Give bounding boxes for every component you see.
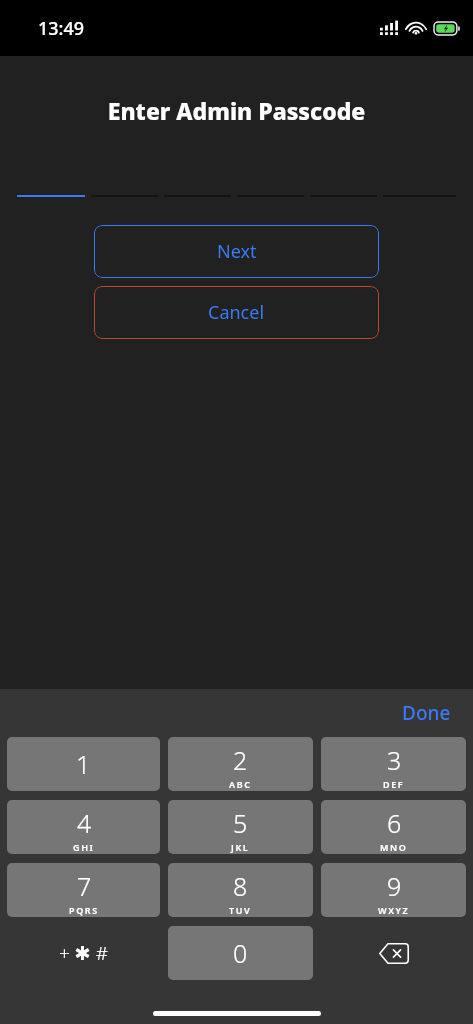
button[interactable]: 5 <box>168 800 313 854</box>
staticText: 5 <box>233 806 248 840</box>
staticText: 7 <box>77 869 92 903</box>
button[interactable]: Backspace <box>321 926 466 980</box>
staticText: 8 <box>233 869 248 903</box>
button[interactable]: 6 <box>321 800 466 854</box>
staticText: Cancel <box>208 300 265 325</box>
button[interactable]: + ✱ # <box>7 926 160 980</box>
button[interactable]: 9 <box>321 863 466 917</box>
button[interactable]: Cancel <box>94 286 379 339</box>
button[interactable]: 2 <box>168 737 313 791</box>
staticText: GHI <box>73 841 95 853</box>
staticText: + ✱ # <box>59 940 108 966</box>
staticText: Done <box>402 700 451 726</box>
button[interactable]: Next <box>94 225 379 278</box>
button[interactable]: 3 <box>321 737 466 791</box>
staticText: MNO <box>380 841 408 853</box>
staticText: ABC <box>229 778 252 790</box>
staticText: 4 <box>77 806 92 840</box>
staticText: 3 <box>387 743 402 777</box>
staticText: WXYZ <box>378 904 410 916</box>
staticText: 1 <box>76 747 91 781</box>
staticText: 6 <box>387 806 402 840</box>
button[interactable]: 1 <box>7 737 160 791</box>
staticText: 9 <box>387 869 402 903</box>
staticText: Next <box>217 239 257 264</box>
button[interactable]: 4 <box>7 800 160 854</box>
staticText: JKL <box>231 841 250 853</box>
staticText: 0 <box>233 936 248 970</box>
button[interactable]: 8 <box>168 863 313 917</box>
staticText: TUV <box>229 904 252 916</box>
button[interactable]: Done <box>394 696 459 730</box>
button[interactable]: 0 <box>168 926 313 980</box>
staticText: 13:49 <box>38 16 85 41</box>
staticText: 2 <box>233 743 248 777</box>
staticText: DEF <box>383 778 405 790</box>
button[interactable]: 7 <box>7 863 160 917</box>
staticText: PQRS <box>69 904 99 916</box>
staticText: Enter Admin Passcode <box>0 95 473 126</box>
